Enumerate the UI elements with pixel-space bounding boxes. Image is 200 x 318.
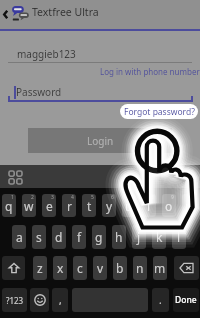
staticText: r bbox=[67, 198, 72, 214]
button[interactable]: w bbox=[22, 194, 36, 217]
staticText: . bbox=[159, 293, 162, 307]
button[interactable]: Login bbox=[28, 128, 172, 153]
staticText: n bbox=[136, 260, 144, 276]
staticText: Password bbox=[16, 85, 62, 99]
staticText: s bbox=[36, 229, 42, 245]
staticText: t bbox=[87, 198, 92, 214]
button[interactable]: k bbox=[152, 225, 166, 249]
staticText: g bbox=[95, 229, 103, 245]
button[interactable]: Back bbox=[0, 5, 11, 24]
staticText: j bbox=[137, 229, 141, 245]
staticText: q bbox=[5, 198, 13, 214]
staticText: a bbox=[16, 229, 23, 245]
staticText: o bbox=[165, 198, 173, 214]
staticText: x bbox=[57, 260, 64, 276]
staticText: e bbox=[46, 198, 53, 214]
button[interactable]: , bbox=[52, 288, 68, 312]
button[interactable]: Shift bbox=[2, 256, 25, 280]
staticText: 2 bbox=[31, 194, 34, 201]
button[interactable]: g bbox=[92, 225, 106, 249]
button[interactable]: m bbox=[153, 256, 167, 280]
button[interactable]: j bbox=[132, 225, 146, 249]
button[interactable]: t bbox=[82, 194, 96, 217]
button[interactable]: a bbox=[12, 225, 26, 249]
staticText: ?123 bbox=[6, 295, 24, 306]
button[interactable]: h bbox=[112, 225, 126, 249]
button[interactable]: Emoji bbox=[30, 288, 49, 312]
staticText: maggieb123 bbox=[17, 47, 76, 61]
staticText: 8 bbox=[151, 194, 154, 201]
button[interactable]: i bbox=[142, 194, 156, 217]
staticText: y bbox=[106, 198, 113, 214]
staticText: u bbox=[125, 198, 133, 214]
button[interactable]: p bbox=[182, 194, 196, 217]
staticText: Forgot password? bbox=[124, 106, 195, 118]
button[interactable]: s bbox=[32, 225, 46, 249]
staticText: 3 bbox=[51, 194, 54, 201]
staticText: m bbox=[154, 260, 166, 276]
staticText: b bbox=[116, 260, 124, 276]
staticText: 4 bbox=[71, 194, 74, 201]
staticText: 5 bbox=[91, 194, 94, 201]
button[interactable]: x bbox=[53, 256, 67, 280]
staticText: 7 bbox=[131, 194, 134, 201]
staticText: Log in with phone number bbox=[100, 66, 200, 77]
staticText: d bbox=[55, 229, 63, 245]
button[interactable]: u bbox=[122, 194, 136, 217]
button[interactable]: b bbox=[113, 256, 127, 280]
staticText: Done bbox=[175, 294, 197, 306]
staticText: l bbox=[177, 229, 181, 245]
staticText: f bbox=[77, 229, 82, 245]
staticText: i bbox=[147, 198, 151, 214]
button[interactable]: Done bbox=[173, 288, 199, 312]
button[interactable]: c bbox=[73, 256, 87, 280]
staticText: p bbox=[185, 198, 193, 214]
button[interactable]: q bbox=[2, 194, 16, 217]
button[interactable]: e bbox=[42, 194, 56, 217]
staticText: v bbox=[97, 260, 104, 276]
button[interactable]: Backspace bbox=[174, 256, 199, 280]
button[interactable]: Forgot password? bbox=[120, 104, 198, 119]
staticText: c bbox=[77, 260, 83, 276]
staticText: z bbox=[37, 260, 43, 276]
button[interactable]: y bbox=[102, 194, 116, 217]
staticText: h bbox=[115, 229, 123, 245]
button[interactable]: r bbox=[62, 194, 76, 217]
button[interactable]: ?123 bbox=[2, 288, 27, 312]
staticText: Login bbox=[87, 134, 114, 148]
button[interactable]: l bbox=[172, 225, 186, 249]
button[interactable]: Keyboard menu bbox=[9, 171, 22, 184]
staticText: , bbox=[59, 293, 62, 307]
button[interactable]: Log in with phone number bbox=[98, 65, 200, 78]
staticText: Textfree Ultra bbox=[32, 5, 99, 19]
button[interactable]: z bbox=[33, 256, 47, 280]
staticText: 9 bbox=[171, 194, 174, 201]
staticText: 6 bbox=[111, 194, 114, 201]
staticText: k bbox=[156, 229, 163, 245]
button[interactable]: o bbox=[162, 194, 176, 217]
button[interactable]: n bbox=[133, 256, 147, 280]
button[interactable]: . bbox=[152, 288, 169, 312]
button[interactable]: v bbox=[93, 256, 107, 280]
button[interactable]: f bbox=[72, 225, 86, 249]
button[interactable]: d bbox=[52, 225, 66, 249]
staticText: w bbox=[24, 198, 34, 214]
staticText: 1 bbox=[11, 194, 14, 201]
